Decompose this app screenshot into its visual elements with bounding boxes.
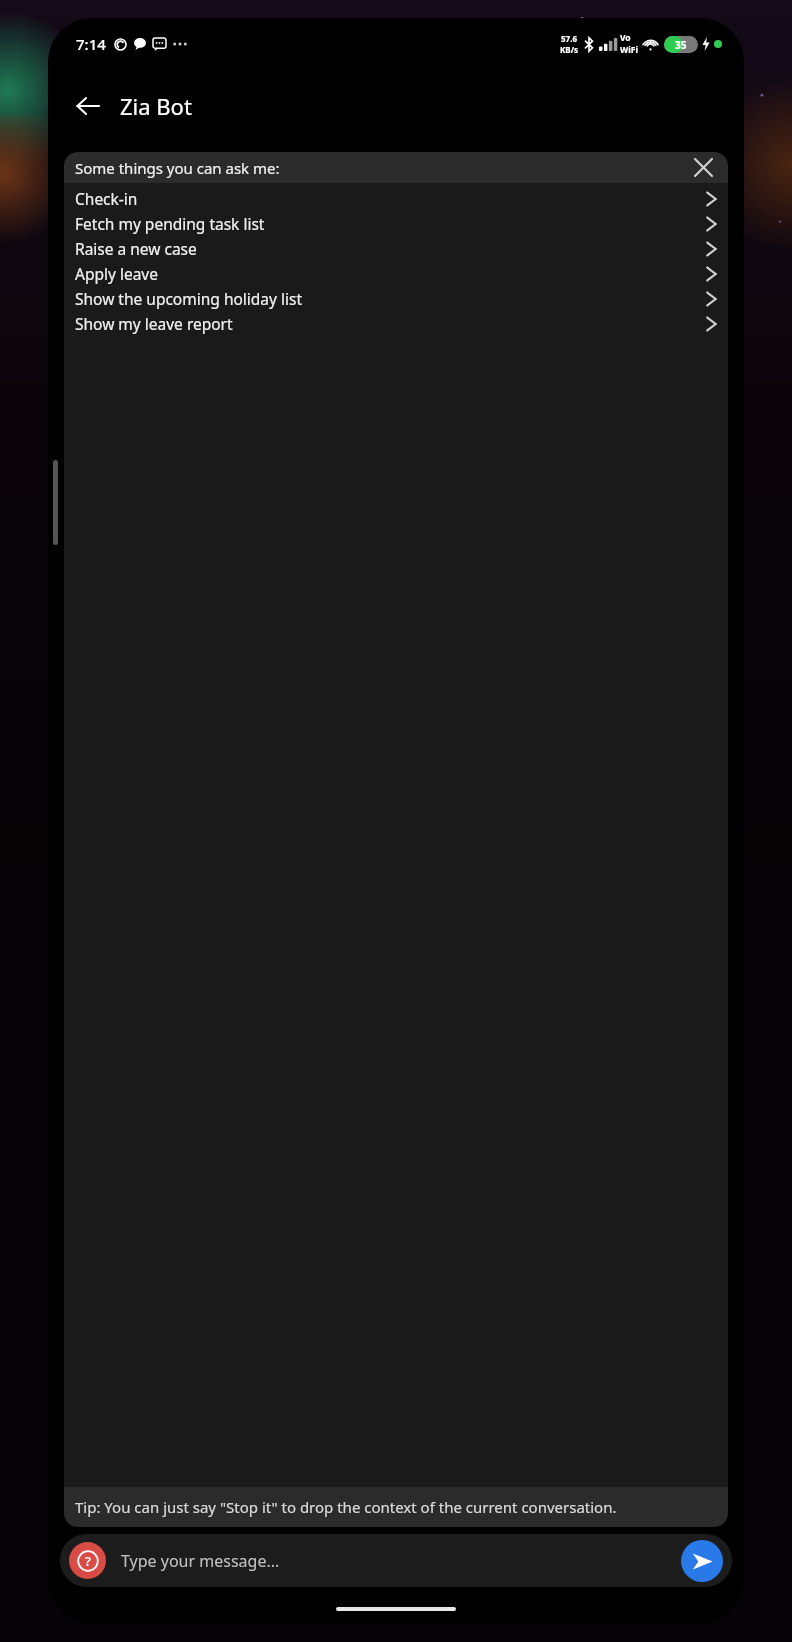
staticText: Zia Bot — [120, 91, 192, 121]
button[interactable]: Send — [681, 1540, 723, 1582]
button[interactable]: Show the upcoming holiday list — [64, 286, 728, 311]
button[interactable]: Type your message... — [121, 1550, 681, 1572]
staticText: 7:14 — [76, 34, 106, 54]
staticText: Some things you can ask me: — [75, 158, 686, 178]
staticText: 35 — [675, 38, 687, 52]
button[interactable]: Fetch my pending task list — [64, 211, 728, 236]
button[interactable]: Close suggestions — [686, 152, 720, 183]
staticText: Vo — [620, 32, 631, 44]
staticText: Apply leave — [75, 263, 706, 284]
button[interactable]: Show my leave report — [64, 311, 728, 336]
staticText: KB/s — [560, 44, 578, 55]
button[interactable]: Apply leave — [64, 261, 728, 286]
staticText: 57.6 — [561, 33, 577, 44]
button[interactable]: Help — [69, 1542, 106, 1579]
staticText: Raise a new case — [75, 238, 706, 259]
button[interactable]: Back — [62, 80, 114, 132]
staticText: Fetch my pending task list — [75, 213, 706, 234]
staticText: WiFi — [620, 44, 638, 56]
staticText: ? — [85, 1552, 91, 1570]
button[interactable]: Check-in — [64, 186, 728, 211]
staticText: Check-in — [75, 188, 706, 209]
staticText: Show my leave report — [75, 313, 706, 334]
staticText: Show the upcoming holiday list — [75, 288, 706, 309]
button[interactable]: Raise a new case — [64, 236, 728, 261]
staticText: Tip: You can just say "Stop it" to drop … — [75, 1497, 617, 1517]
